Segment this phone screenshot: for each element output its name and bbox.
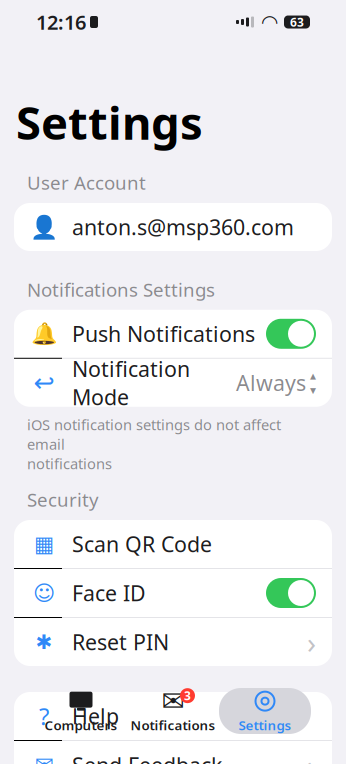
button[interactable]: Settings [219,688,311,734]
button[interactable]: 👤 [14,203,332,251]
staticText: User Account [27,170,146,195]
staticText: ? [39,700,49,732]
staticText: Notifications [130,716,215,734]
staticText: Security [27,487,99,512]
staticText: › [307,745,316,764]
staticText: Push Notifications [72,320,255,348]
staticText: 63 [290,14,304,30]
button[interactable]: ? [14,692,332,741]
staticText: Scan QR Code [72,530,212,558]
staticText: Help [72,702,119,730]
staticText: Always [236,369,306,397]
button[interactable]: ↩ [14,359,332,407]
staticText: › [307,622,316,661]
staticText: ✱ [35,631,52,653]
staticText: Settings [238,716,291,734]
button[interactable]: ▦ [14,520,332,569]
staticText: 3 [184,688,191,704]
staticText: ▾ [310,383,316,397]
button[interactable]: Computers [35,688,127,734]
button[interactable]: ☺ [14,569,332,618]
staticText: iOS notification settings do not affect … [27,415,281,473]
staticText: ☺ [33,581,55,605]
button[interactable]: ✱ [14,618,332,666]
staticText: Notification Mode [72,354,190,411]
staticText: Face ID [72,579,146,607]
staticText: Reset PIN [72,628,169,656]
staticText: ◠ [262,11,277,33]
staticText: ✉ [34,752,53,764]
staticText: ✉ [161,685,184,717]
staticText: Send Feedback [72,751,222,764]
staticText: 🔔 [30,322,57,346]
staticText: 12:16 [36,9,86,35]
staticText: ↩ [33,368,54,397]
staticText: 👤 [30,214,58,240]
button[interactable]: ✉ [127,688,219,734]
staticText: Computers [44,716,117,734]
staticText: anton.s@msp360.com [72,213,294,241]
button[interactable]: 🔔 [14,310,332,359]
staticText: Notifications Settings [27,277,215,302]
button[interactable]: ✉ [14,741,332,764]
staticText: ▴ [310,369,316,382]
staticText: ▦ [34,532,54,556]
staticText: Settings [16,92,203,152]
